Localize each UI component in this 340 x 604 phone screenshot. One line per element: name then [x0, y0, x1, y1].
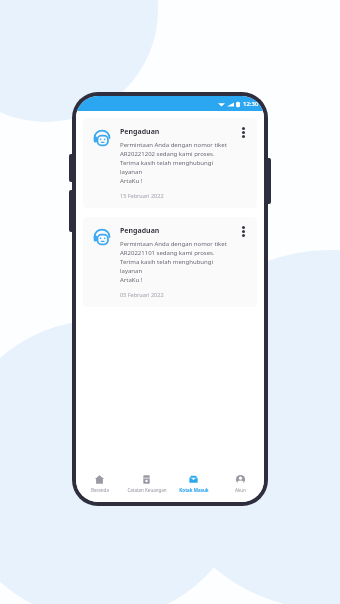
staticText: Pengaduan [120, 226, 160, 236]
button[interactable]: Pengaduan [83, 217, 257, 307]
staticText: Kotak Masuk [179, 487, 209, 493]
button[interactable]: Kotak Masuk [170, 468, 217, 502]
button[interactable]: Akun [217, 468, 264, 502]
staticText: Catatan Keuangan [127, 487, 167, 493]
staticText: 05 Februari 2022 [120, 291, 164, 298]
button[interactable]: Catatan Keuangan [123, 468, 170, 502]
staticText: 12:30 [243, 100, 259, 108]
button[interactable]: More options [238, 127, 248, 141]
staticText: Pengaduan [120, 127, 160, 137]
button[interactable]: Pengaduan [83, 118, 257, 208]
staticText: Akun [235, 487, 246, 493]
staticText: Beranda [91, 487, 109, 493]
staticText: Permintaan Anda dengan nomor tiket AR202… [120, 141, 234, 185]
staticText: 15 Februari 2022 [120, 192, 164, 199]
button[interactable]: More options [238, 226, 248, 240]
button[interactable]: Beranda [76, 468, 123, 502]
staticText: Permintaan Anda dengan nomor tiket AR202… [120, 240, 234, 284]
